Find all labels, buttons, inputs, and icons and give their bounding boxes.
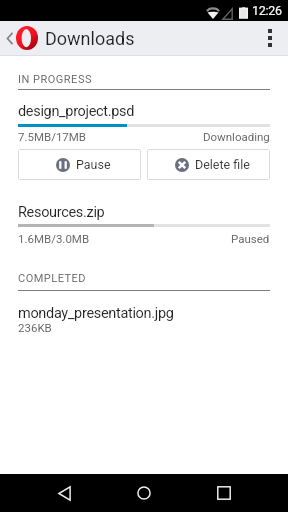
staticText: 1.6MB/3.0MB xyxy=(18,232,90,245)
staticText: Resources.zip xyxy=(18,204,105,221)
staticText: 7.5MB/17MB xyxy=(18,130,87,143)
button[interactable]: Delete file xyxy=(147,149,270,180)
staticText: Pause xyxy=(76,157,111,172)
staticText: Paused xyxy=(231,232,270,245)
button[interactable]: More options xyxy=(258,21,282,54)
button[interactable]: Back xyxy=(1,21,18,56)
button[interactable]: Home xyxy=(124,474,164,512)
staticText: Downloading xyxy=(203,130,270,143)
staticText: monday_presentation.jpg xyxy=(18,305,174,322)
staticText: design_project.psd xyxy=(18,103,135,120)
staticText: Delete file xyxy=(195,157,250,172)
button[interactable]: Pause xyxy=(18,149,141,180)
staticText: COMPLETED xyxy=(18,272,87,285)
staticText: IN PROGRESS xyxy=(18,73,92,86)
button[interactable]: Recent apps xyxy=(204,474,244,512)
staticText: 12:26 xyxy=(252,3,282,18)
staticText: Downloads xyxy=(45,28,135,49)
staticText: 236KB xyxy=(18,321,52,334)
button[interactable]: Back xyxy=(44,474,84,512)
